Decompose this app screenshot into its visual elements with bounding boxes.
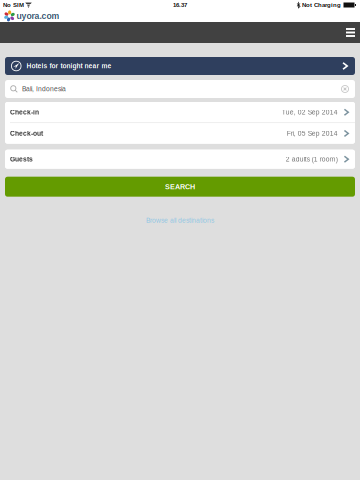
staticText: Browse all destinations <box>146 217 214 224</box>
staticText: No SIM <box>3 2 24 8</box>
staticText: 2 adults (1 room) <box>286 155 338 163</box>
staticText: uyora.com <box>16 11 59 21</box>
staticText: SEARCH <box>165 183 195 191</box>
button[interactable]: Menu <box>338 22 360 43</box>
staticText: Fri, 05 Sep 2014 <box>287 130 338 137</box>
button[interactable]: Check-out <box>5 123 355 144</box>
staticText: Hotels for tonight near me <box>26 62 111 70</box>
staticText: Check-out <box>10 130 43 137</box>
button[interactable]: Guests <box>5 150 355 169</box>
staticText: Bali, Indonesia <box>22 85 66 93</box>
button[interactable]: Check-in <box>5 102 355 122</box>
staticText: Guests <box>10 155 33 163</box>
button[interactable]: SEARCH <box>5 177 355 197</box>
button[interactable]: Hotels for tonight near me <box>5 57 355 75</box>
staticText: 16.37 <box>173 2 187 8</box>
button[interactable]: Browse all destinations <box>5 197 355 230</box>
staticText: Check-in <box>10 108 39 116</box>
staticText: Not Charging <box>302 2 341 8</box>
button[interactable]: Clear search text <box>341 85 349 93</box>
staticText: Tue, 02 Sep 2014 <box>282 108 338 116</box>
